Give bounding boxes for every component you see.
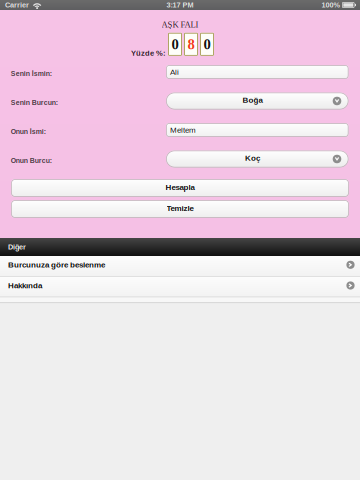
staticText: 0: [171, 36, 178, 52]
staticText: 100%: [321, 1, 340, 9]
staticText: Onun İsmi:: [11, 128, 46, 135]
staticText: Diğer: [8, 243, 26, 251]
button[interactable]: Koç: [166, 150, 348, 167]
staticText: Temizle: [166, 204, 193, 213]
staticText: Hesapla: [165, 183, 194, 192]
staticText: Hakkında: [8, 281, 42, 290]
staticText: Onun Burcu:: [11, 157, 52, 164]
staticText: 3:17 PM: [166, 1, 193, 9]
staticText: 8: [187, 36, 194, 52]
button[interactable]: Temizle: [11, 200, 349, 218]
button[interactable]: Hakkında: [0, 277, 360, 297]
button[interactable]: Hesapla: [11, 179, 349, 197]
button[interactable]: Burcunuza göre beslenme: [0, 256, 360, 276]
staticText: Yüzde %:: [131, 49, 166, 57]
staticText: AŞK FALI: [161, 20, 198, 29]
button[interactable]: Boğa: [166, 92, 348, 109]
staticText: Boğa: [242, 96, 262, 104]
staticText: 0: [203, 36, 210, 52]
staticText: Carrier: [5, 1, 29, 9]
staticText: Ali: [170, 67, 179, 76]
staticText: Senin Burcun:: [11, 99, 58, 106]
staticText: Burcunuza göre beslenme: [8, 260, 105, 269]
staticText: Koç: [245, 154, 260, 162]
staticText: Meltem: [170, 125, 196, 134]
staticText: Senin İsmin:: [11, 70, 52, 77]
